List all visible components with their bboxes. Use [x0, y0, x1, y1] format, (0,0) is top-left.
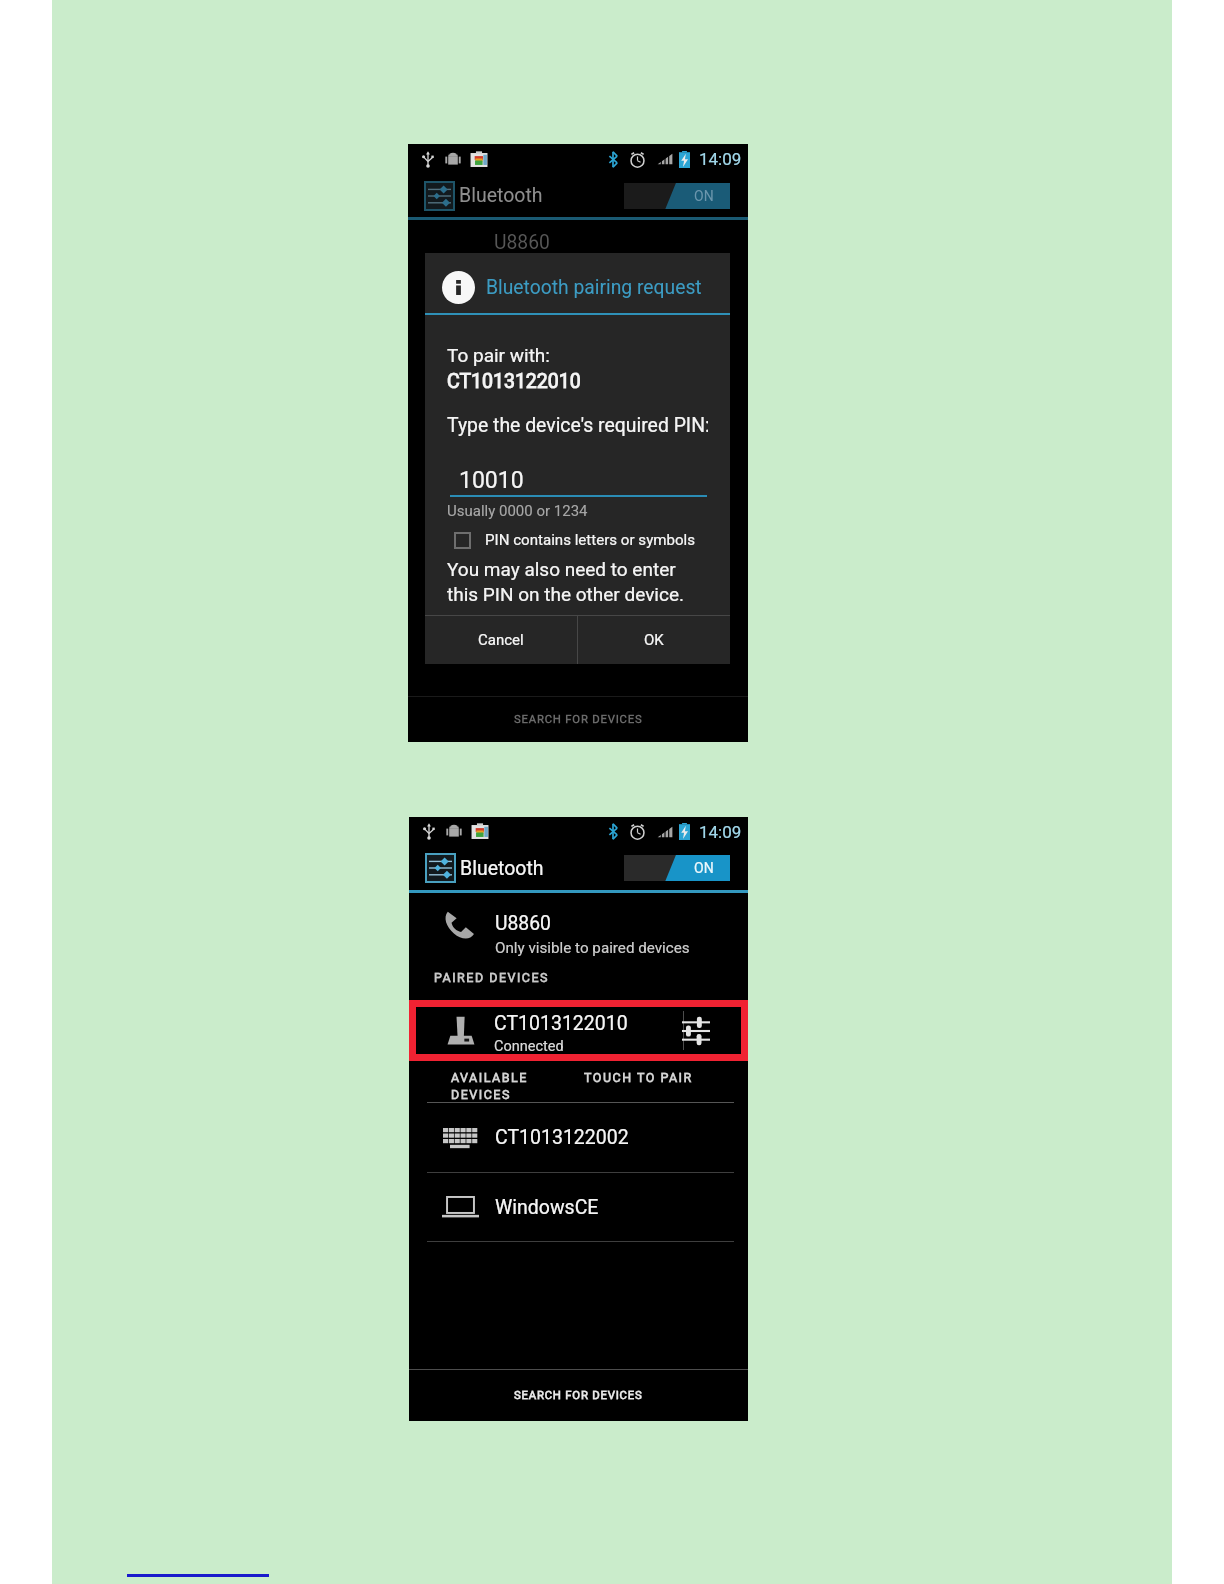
staticText: this PIN on the other device. [447, 583, 685, 605]
staticText: Only visible to paired devices [495, 939, 690, 957]
staticText: U8860 [494, 231, 550, 254]
button[interactable]: CT1013122010 [416, 1007, 741, 1054]
staticText: You may also need to enter [447, 558, 676, 580]
staticText: U8860 [495, 912, 551, 935]
staticText: ON [694, 188, 714, 204]
staticText: Bluetooth [460, 857, 544, 880]
staticText: CT1013122010 [494, 1012, 628, 1035]
staticText: CT1013122002 [495, 1126, 629, 1149]
staticText: AVAILABLE [451, 1070, 528, 1085]
button[interactable]: OK [578, 616, 730, 664]
staticText: Cancel [478, 631, 524, 649]
button[interactable]: Bluetooth on [624, 855, 730, 881]
staticText: CT1013122010 [447, 370, 581, 393]
button[interactable]: SEARCH FOR DEVICES [409, 1370, 748, 1421]
button[interactable]: Cancel [425, 616, 577, 664]
staticText: To pair with: [447, 344, 550, 366]
staticText: SEARCH FOR DEVICES [514, 1389, 643, 1402]
button[interactable]: CT1013122002 [409, 1103, 748, 1172]
staticText: Bluetooth pairing request [486, 276, 702, 299]
staticText: ON [694, 860, 714, 876]
staticText: Bluetooth [459, 184, 543, 207]
staticText: OK [644, 631, 664, 649]
button[interactable]: SEARCH FOR DEVICES [408, 697, 748, 742]
button[interactable]: U8860 [409, 894, 748, 975]
staticText: Connected [494, 1038, 564, 1055]
staticText: PAIRED DEVICES [434, 970, 550, 985]
staticText: WindowsCE [495, 1196, 599, 1219]
staticText: PIN contains letters or symbols [485, 531, 696, 549]
staticText: 10010 [459, 467, 524, 494]
button[interactable]: Device settings [667, 1007, 724, 1054]
staticText: 14:09 [699, 149, 742, 169]
staticText: TOUCH TO PAIR [584, 1070, 693, 1085]
staticText: Type the device's required PIN: [447, 414, 708, 437]
button[interactable]: PIN contains letters or symbols [447, 531, 700, 549]
staticText: 14:09 [699, 822, 742, 842]
staticText: SEARCH FOR DEVICES [514, 713, 643, 726]
button[interactable]: Bluetooth on [624, 183, 730, 209]
staticText: DEVICES [451, 1087, 511, 1102]
button[interactable]: WindowsCE [409, 1173, 748, 1241]
staticText: Usually 0000 or 1234 [447, 502, 588, 520]
